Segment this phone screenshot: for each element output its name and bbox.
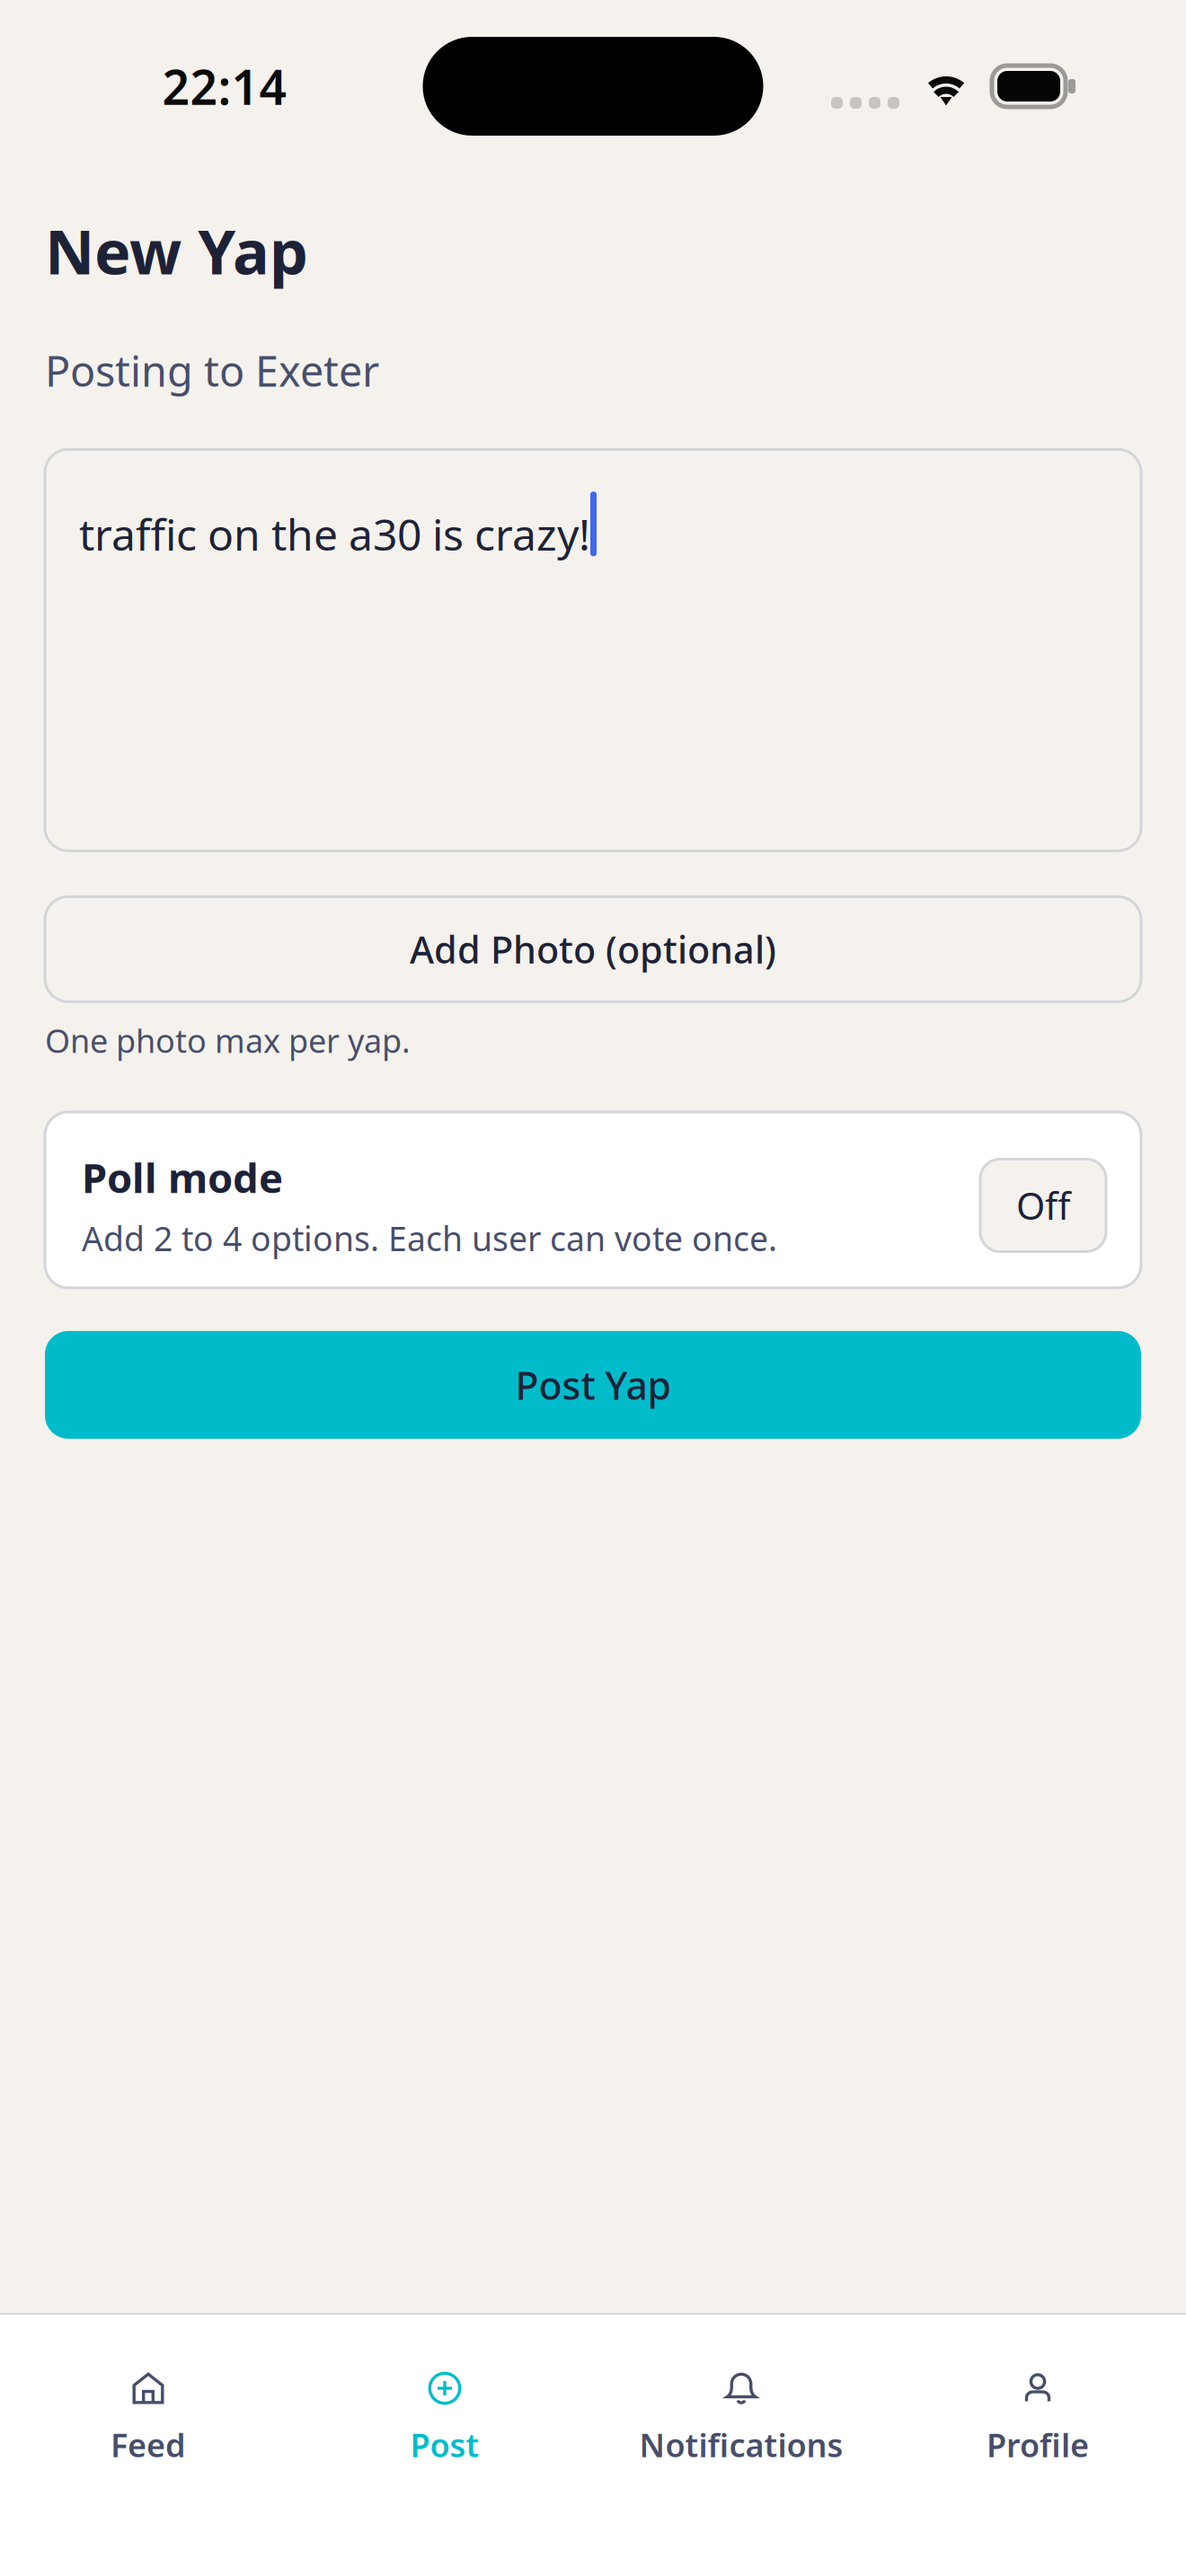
staticText: Add 2 to 4 options. Each user can vote o…	[82, 1216, 777, 1261]
button[interactable]: Notifications	[593, 2315, 889, 2490]
button[interactable]: Post Yap	[45, 1331, 1141, 1439]
button[interactable]: Post	[296, 2315, 593, 2490]
staticText: traffic on the a30 is crazy!	[79, 505, 590, 562]
button[interactable]: Off	[980, 1159, 1106, 1252]
staticText: One photo max per yap.	[45, 1019, 411, 1062]
staticText: New Yap	[45, 210, 308, 291]
staticText: 22:14	[162, 54, 287, 118]
button[interactable]: Feed	[0, 2315, 296, 2490]
staticText: Posting to Exeter	[45, 342, 379, 398]
button[interactable]: Profile	[889, 2315, 1186, 2490]
staticText: Feed	[111, 2423, 186, 2466]
staticText: Off	[1016, 1181, 1070, 1230]
staticText: Profile	[987, 2423, 1089, 2466]
staticText: Post	[410, 2423, 479, 2466]
button[interactable]: Add Photo (optional)	[45, 897, 1141, 1002]
staticText: Add Photo (optional)	[410, 925, 776, 974]
staticText: Poll mode	[82, 1150, 283, 1204]
staticText: Post Yap	[515, 1359, 671, 1410]
staticText: Notifications	[639, 2423, 843, 2466]
